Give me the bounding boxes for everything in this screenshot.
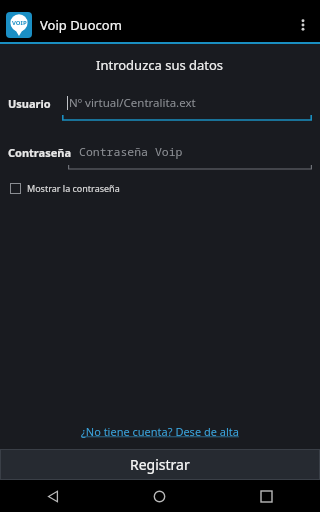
staticText: Mostrar la contraseña: [27, 182, 120, 194]
button[interactable]: More options: [286, 8, 320, 42]
button[interactable]: Home: [106, 480, 213, 512]
button[interactable]: ¿No tiene cuenta? Dese de alta: [75, 421, 245, 442]
staticText: Nº virtual/Centralita.ext: [69, 95, 196, 111]
button[interactable]: Back: [0, 480, 106, 512]
staticText: Contraseña Voip: [79, 144, 183, 160]
button[interactable]: Recent apps: [213, 480, 320, 512]
button[interactable]: Registrar: [0, 449, 320, 480]
button[interactable]: Mostrar la contraseña: [8, 180, 122, 196]
staticText: Introduzca sus datos: [96, 56, 224, 74]
staticText: Usuario: [8, 96, 51, 111]
staticText: VOIP: [12, 19, 27, 27]
staticText: Voip Duocom: [40, 16, 122, 34]
staticText: ¿No tiene cuenta? Dese de alta: [81, 424, 239, 439]
staticText: Registrar: [130, 455, 190, 474]
button[interactable]: Contraseña Voip: [79, 139, 312, 165]
button[interactable]: Nº virtual/Centralita.ext: [67, 90, 312, 116]
staticText: Contraseña: [8, 145, 71, 160]
